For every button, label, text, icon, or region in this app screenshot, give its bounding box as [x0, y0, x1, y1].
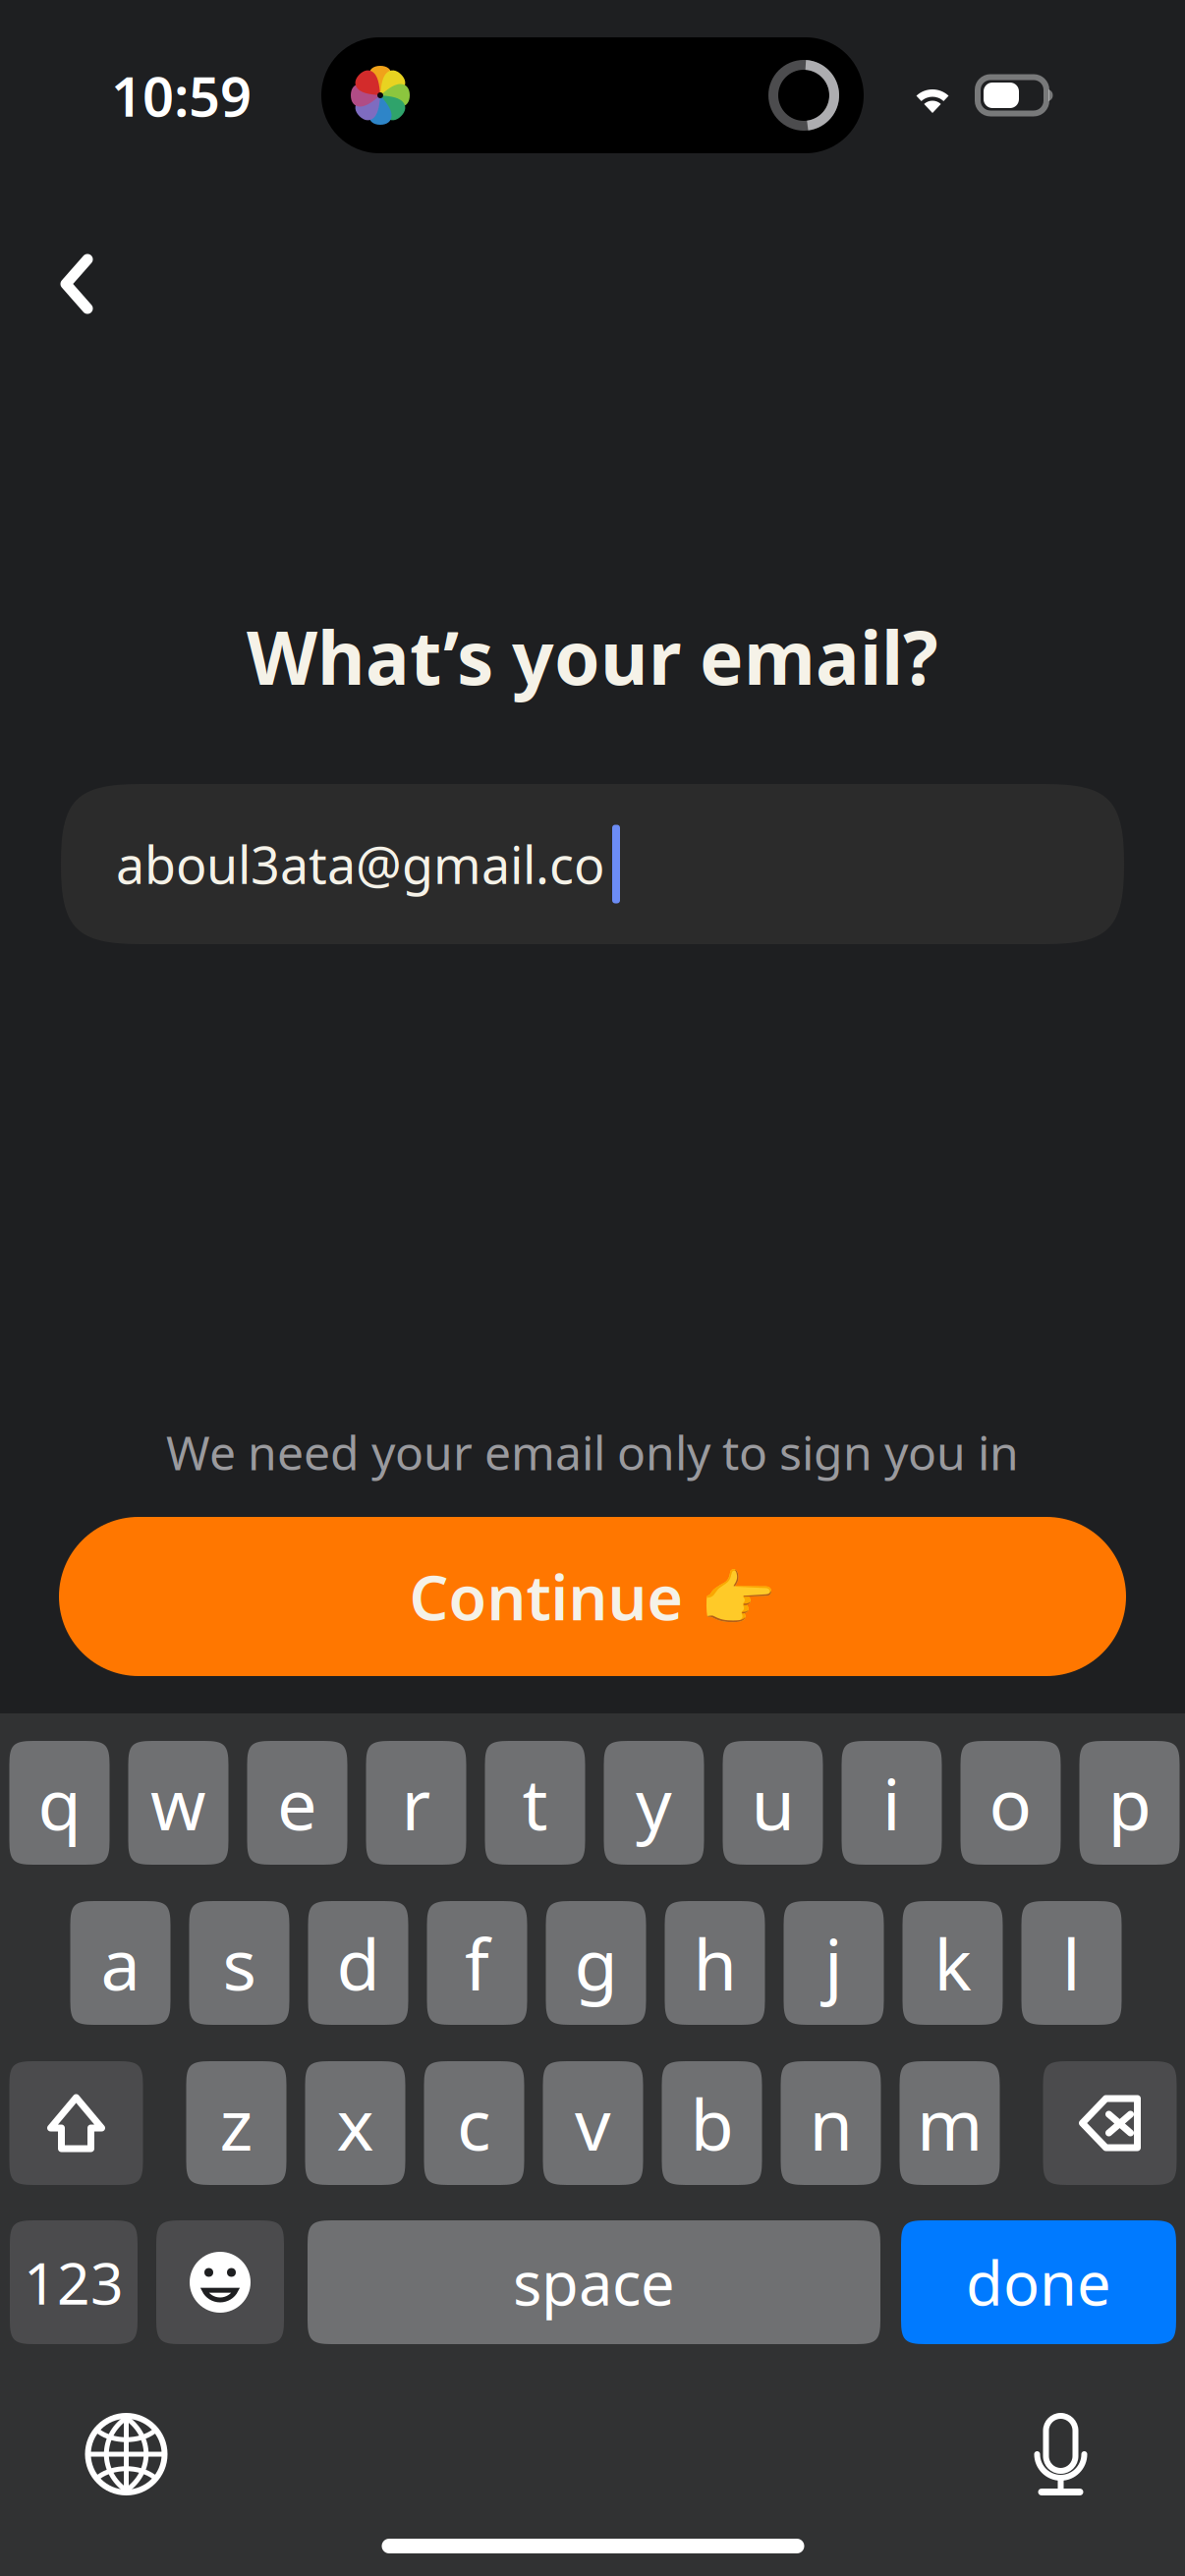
staticText: done [966, 2242, 1111, 2322]
button[interactable]: d [308, 1901, 408, 2025]
button[interactable]: i [842, 1741, 942, 1865]
button[interactable]: Back [33, 230, 120, 338]
button[interactable]: a [70, 1901, 170, 2025]
button[interactable]: c [424, 2061, 524, 2185]
staticText: r [401, 1756, 431, 1850]
button[interactable]: Next keyboard [87, 2415, 166, 2493]
button[interactable]: Dictate [1034, 2413, 1087, 2495]
staticText: q [38, 1756, 81, 1850]
staticText: z [220, 2076, 253, 2170]
staticText: h [693, 1916, 736, 2010]
staticText: c [457, 2076, 491, 2170]
button[interactable]: v [543, 2061, 643, 2185]
staticText: s [223, 1916, 256, 2010]
button[interactable]: q [9, 1741, 110, 1865]
staticText: Continue 👉 [409, 1556, 776, 1637]
button[interactable]: k [903, 1901, 1003, 2025]
staticText: w [150, 1756, 206, 1850]
staticText: b [690, 2076, 734, 2170]
staticText: space [513, 2242, 675, 2322]
staticText: o [989, 1756, 1032, 1850]
staticText: d [337, 1916, 380, 2010]
button[interactable]: y [604, 1741, 704, 1865]
staticText: p [1108, 1756, 1151, 1850]
staticText: e [277, 1756, 317, 1850]
button[interactable]: Continue 👉 [59, 1517, 1126, 1676]
button[interactable]: w [128, 1741, 228, 1865]
button[interactable]: f [427, 1901, 527, 2025]
staticText: m [917, 2076, 983, 2170]
button[interactable]: s [189, 1901, 289, 2025]
button[interactable]: n [781, 2061, 881, 2185]
button[interactable]: r [366, 1741, 466, 1865]
button[interactable]: l [1021, 1901, 1122, 2025]
staticText: n [809, 2076, 852, 2170]
button[interactable]: x [305, 2061, 405, 2185]
button[interactable]: b [662, 2061, 762, 2185]
button[interactable]: done [901, 2220, 1176, 2344]
button[interactable]: Delete [1043, 2061, 1177, 2185]
staticText: a [101, 1916, 140, 2010]
button[interactable]: Shift [9, 2061, 143, 2185]
button[interactable]: j [784, 1901, 884, 2025]
staticText: t [522, 1756, 548, 1850]
staticText: v [575, 2076, 611, 2170]
button[interactable]: h [665, 1901, 765, 2025]
staticText: We need your email only to sign you in [166, 1421, 1019, 1483]
staticText: What’s your email? [247, 608, 938, 705]
button[interactable]: g [546, 1901, 646, 2025]
staticText: y [636, 1756, 672, 1850]
staticText: k [934, 1916, 971, 2010]
button[interactable]: e [247, 1741, 347, 1865]
staticText: l [1062, 1916, 1081, 2010]
button[interactable]: space [308, 2220, 880, 2344]
button[interactable]: o [960, 1741, 1061, 1865]
button[interactable]: z [186, 2061, 286, 2185]
button[interactable]: 123 [10, 2220, 138, 2344]
staticText: j [824, 1916, 843, 2010]
button[interactable]: Emoji [156, 2220, 284, 2344]
button[interactable]: u [723, 1741, 823, 1865]
button[interactable]: t [485, 1741, 585, 1865]
staticText: x [337, 2076, 374, 2170]
staticText: u [751, 1756, 794, 1850]
button[interactable]: p [1079, 1741, 1180, 1865]
staticText: g [574, 1916, 618, 2010]
staticText: f [465, 1916, 489, 2010]
staticText: i [882, 1756, 901, 1850]
staticText: 10:59 [111, 59, 252, 132]
staticText: 123 [24, 2244, 124, 2320]
button[interactable]: m [900, 2061, 1000, 2185]
staticText: aboul3ata@gmail.co [116, 830, 604, 898]
